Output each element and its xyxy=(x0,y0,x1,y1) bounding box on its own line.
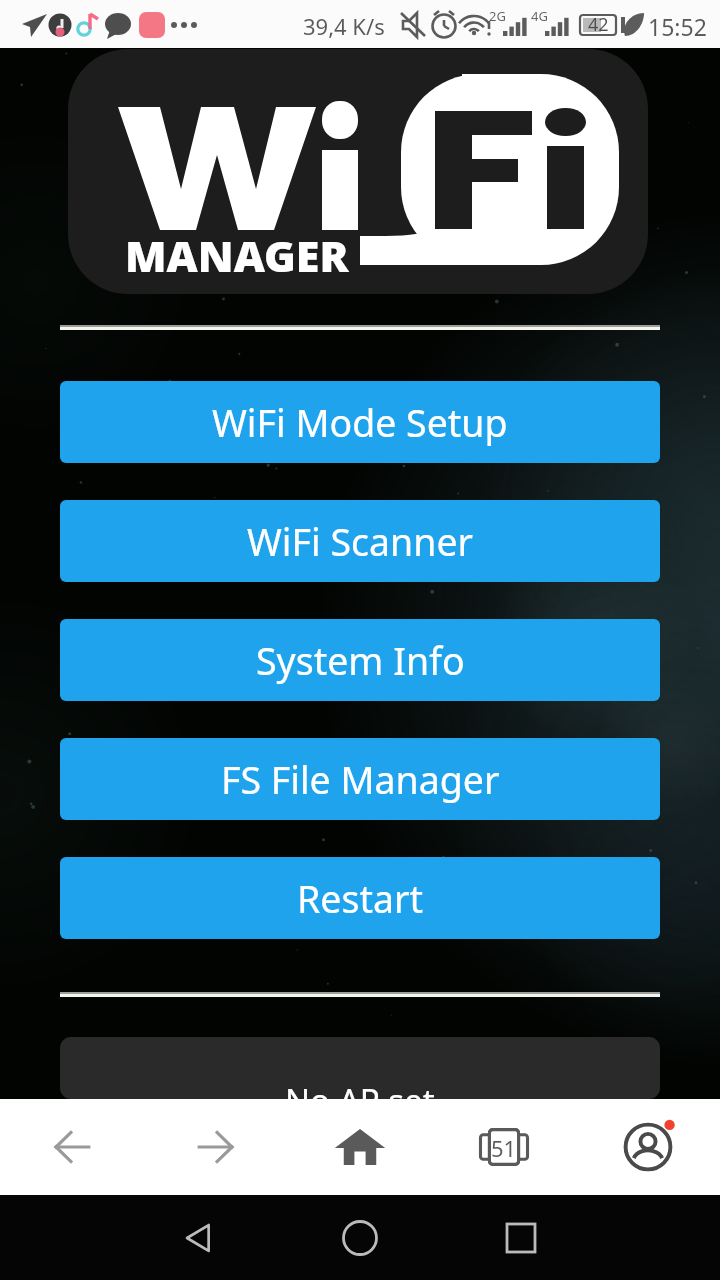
button[interactable]: Restart xyxy=(60,857,660,939)
button[interactable]: FS File Manager xyxy=(60,738,660,820)
button[interactable]: Back xyxy=(170,1208,230,1268)
staticText: System Info xyxy=(256,635,465,686)
button[interactable]: Back xyxy=(0,1099,144,1195)
staticText: MANAGER xyxy=(125,226,349,285)
button[interactable]: Open tabs, 51 open xyxy=(432,1099,576,1195)
button[interactable]: Profile xyxy=(576,1099,720,1195)
staticText: Restart xyxy=(297,873,424,924)
staticText: FS File Manager xyxy=(221,754,500,805)
staticText: 51 xyxy=(491,1133,517,1163)
button[interactable]: Home xyxy=(288,1099,432,1195)
button[interactable]: No AP set xyxy=(60,1037,660,1099)
staticText: WiFi Scanner xyxy=(247,516,474,567)
button[interactable]: Forward xyxy=(144,1099,288,1195)
button[interactable]: WiFi Mode Setup xyxy=(60,381,660,463)
staticText: 4G xyxy=(531,7,548,25)
staticText: No AP set xyxy=(285,1078,435,1099)
button[interactable]: Home xyxy=(330,1208,390,1268)
staticText: 15:52 xyxy=(648,11,707,42)
staticText: 42 xyxy=(588,12,609,37)
button[interactable]: WiFi Scanner xyxy=(60,500,660,582)
button[interactable]: System Info xyxy=(60,619,660,701)
staticText: WiFi Mode Setup xyxy=(212,397,508,448)
staticText: 2G xyxy=(489,7,506,25)
button[interactable]: Recent apps xyxy=(491,1208,551,1268)
staticText: 39,4 K/s xyxy=(303,11,385,41)
